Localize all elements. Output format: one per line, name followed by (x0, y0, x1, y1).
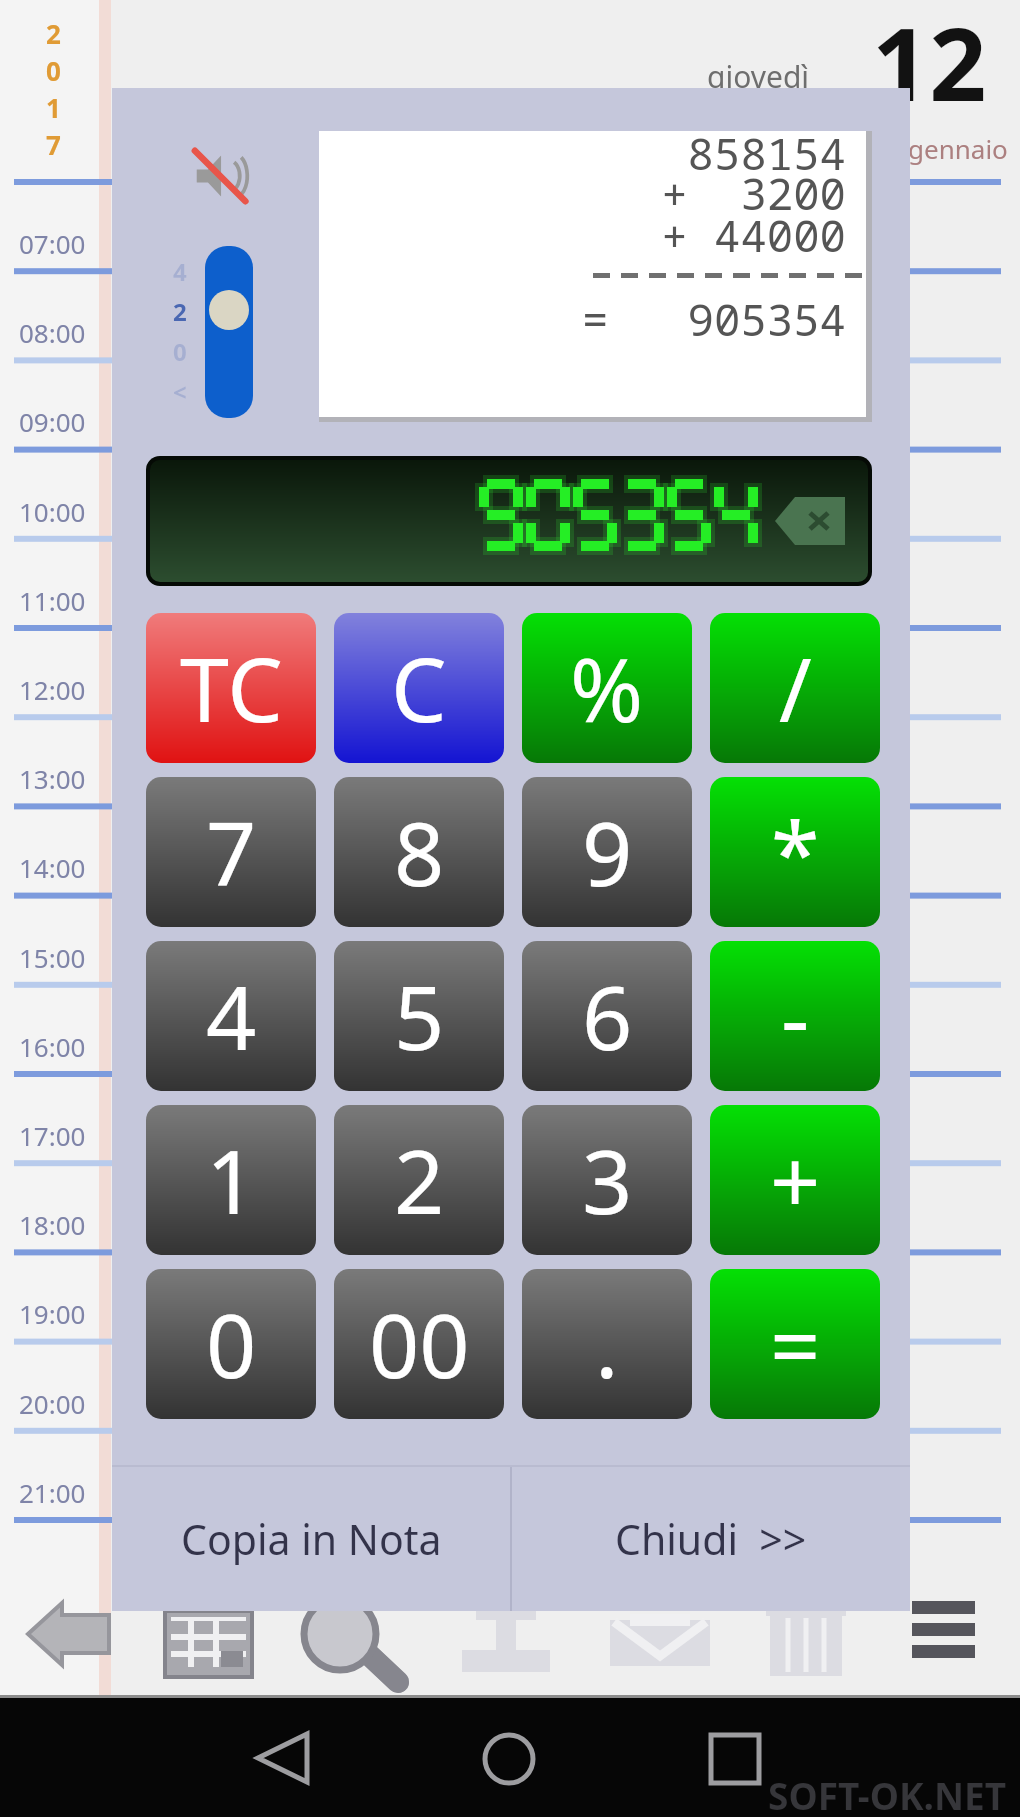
button[interactable]: C (334, 613, 504, 763)
staticText: + (770, 1120, 821, 1240)
button[interactable]: = (710, 1269, 880, 1419)
staticText: 12 (872, 0, 987, 130)
button[interactable]: Home (482, 1732, 536, 1786)
staticText: 4 (173, 255, 187, 288)
staticText: . (595, 1284, 619, 1404)
staticText: 18:00 (19, 1207, 86, 1242)
staticText: 07:00 (19, 226, 86, 261)
staticText: 9 (582, 792, 633, 912)
staticText: C (391, 628, 447, 748)
button[interactable]: 00 (334, 1269, 504, 1419)
button[interactable]: 1 (146, 1105, 316, 1255)
button[interactable]: % (522, 613, 692, 763)
staticText: 11:00 (19, 583, 86, 618)
button[interactable]: Search (302, 1608, 406, 1680)
staticText: 2 (394, 1120, 445, 1240)
button[interactable]: 9 (522, 777, 692, 927)
button[interactable]: Calendar (165, 1611, 253, 1677)
staticText: - (781, 956, 810, 1076)
button[interactable]: Chiudi >> (512, 1467, 910, 1611)
button[interactable]: 8 (334, 777, 504, 927)
staticText: % (570, 628, 644, 748)
staticText: 0 (173, 335, 187, 368)
button[interactable]: . (522, 1269, 692, 1419)
staticText: 12:00 (19, 672, 86, 707)
staticText: 7 (206, 792, 257, 912)
staticText: Copia in Nota (181, 1511, 442, 1567)
button[interactable]: 4 (146, 941, 316, 1091)
staticText: Chiudi >> (615, 1511, 807, 1567)
staticText: 08:00 (19, 315, 86, 350)
staticText: 16:00 (19, 1029, 86, 1064)
staticText: 10:00 (19, 494, 86, 529)
staticText: < (173, 375, 187, 408)
staticText: + 44000 (319, 205, 846, 265)
staticText: 0 (46, 53, 61, 88)
button[interactable]: Back (256, 1732, 310, 1786)
staticText: 8 (394, 792, 445, 912)
button[interactable]: 7 (146, 777, 316, 927)
staticText: 1 (206, 1120, 257, 1240)
staticText: 7 (46, 127, 61, 162)
staticText: = (770, 1284, 821, 1404)
button[interactable]: - (710, 941, 880, 1091)
staticText: 0 (206, 1284, 257, 1404)
button[interactable]: TC (146, 613, 316, 763)
button[interactable] (150, 460, 868, 582)
staticText: 4 (206, 956, 257, 1076)
staticText: 858154 (319, 123, 846, 183)
button[interactable]: / (710, 613, 880, 763)
staticText: 2 (46, 16, 61, 51)
staticText: 1 (46, 90, 61, 125)
staticText: 6 (582, 956, 633, 1076)
staticText: 19:00 (19, 1296, 86, 1331)
button[interactable]: Recents (708, 1732, 762, 1786)
button[interactable]: Menu (912, 1601, 975, 1659)
staticText: gennaio (908, 131, 1008, 166)
staticText: 14:00 (19, 850, 86, 885)
button[interactable]: * (710, 777, 880, 927)
button[interactable]: + (710, 1105, 880, 1255)
staticText: / (779, 628, 812, 748)
staticText: 00 (369, 1284, 470, 1404)
staticText: = 905354 (319, 289, 846, 349)
button[interactable]: Back (26, 1603, 116, 1665)
button[interactable]: 0 (146, 1269, 316, 1419)
staticText: 15:00 (19, 940, 86, 975)
staticText: 2 (173, 295, 187, 328)
staticText: 13:00 (19, 761, 86, 796)
button[interactable]: 6 (522, 941, 692, 1091)
staticText: 5 (394, 956, 445, 1076)
button[interactable]: Mute (193, 147, 251, 205)
staticText: + 3200 (319, 163, 846, 223)
staticText: TC (180, 628, 283, 748)
button[interactable]: 5 (334, 941, 504, 1091)
staticText: SOFT-OK.NET (768, 1770, 1007, 1817)
button[interactable]: 2 (334, 1105, 504, 1255)
staticText: * (771, 792, 820, 912)
button[interactable]: Decimals (205, 246, 253, 418)
staticText: 17:00 (19, 1118, 86, 1153)
staticText: giovedì (707, 56, 810, 97)
staticText: 21:00 (19, 1475, 86, 1510)
staticText: 3 (582, 1120, 633, 1240)
button[interactable]: 3 (522, 1105, 692, 1255)
button[interactable]: Copia in Nota (112, 1467, 510, 1611)
staticText: 20:00 (19, 1386, 86, 1421)
staticText: 09:00 (19, 404, 86, 439)
